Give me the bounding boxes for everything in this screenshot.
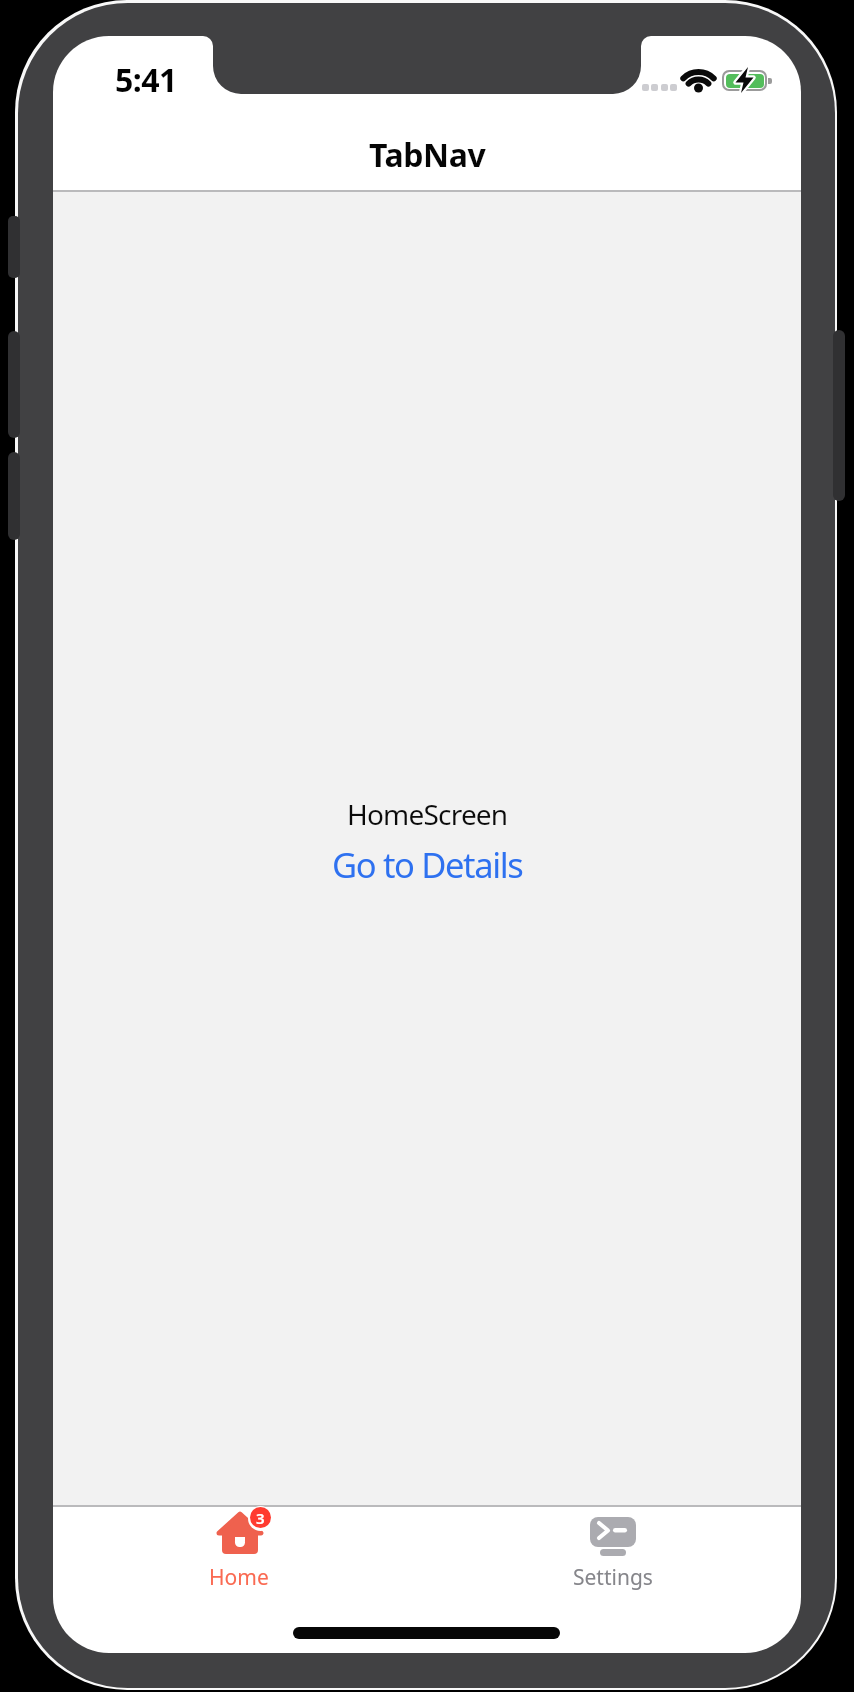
staticText: Go to Details	[332, 841, 523, 887]
button[interactable]: 3	[53, 1506, 427, 1653]
staticText: Home	[209, 1563, 269, 1592]
button[interactable]: Go to Details	[307, 841, 547, 887]
staticText: 5:41	[115, 58, 177, 92]
staticText: 3	[256, 1508, 265, 1528]
staticText: TabNav	[369, 133, 486, 173]
button[interactable]: Settings	[427, 1506, 801, 1653]
staticText: Settings	[573, 1563, 653, 1592]
staticText: HomeScreen	[347, 795, 508, 833]
